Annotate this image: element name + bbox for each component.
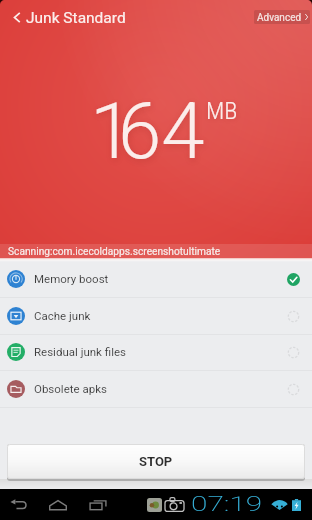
button[interactable]: Back (5, 492, 33, 517)
button[interactable]: Screenshot app (147, 498, 162, 512)
staticText: Advanced (257, 12, 302, 24)
staticText: Cache junk (34, 309, 91, 322)
staticText: 64 (118, 86, 205, 177)
staticText: Scanning:com.icecoldapps.screenshotultim… (8, 246, 221, 258)
button[interactable]: Residual junk files (0, 334, 312, 371)
button[interactable]: Obsolete apks (0, 371, 312, 408)
staticText: 1 (90, 86, 134, 177)
button[interactable]: STOP (7, 444, 305, 481)
staticText: Residual junk files (34, 345, 126, 358)
button[interactable]: Advanced (254, 10, 310, 24)
button[interactable]: Camera (165, 497, 184, 512)
staticText: Memory boost (34, 272, 109, 285)
button[interactable]: Recent apps (84, 492, 112, 517)
staticText: 07:19 (191, 492, 262, 515)
staticText: MB (206, 96, 238, 125)
staticText: STOP (139, 454, 173, 469)
button[interactable]: Memory boost (0, 261, 312, 298)
button[interactable]: Navigate up (4, 0, 30, 34)
button[interactable]: Home (44, 492, 72, 517)
button[interactable]: Cache junk (0, 298, 312, 335)
staticText: Junk Standard (26, 9, 126, 27)
staticText: Obsolete apks (34, 382, 107, 395)
